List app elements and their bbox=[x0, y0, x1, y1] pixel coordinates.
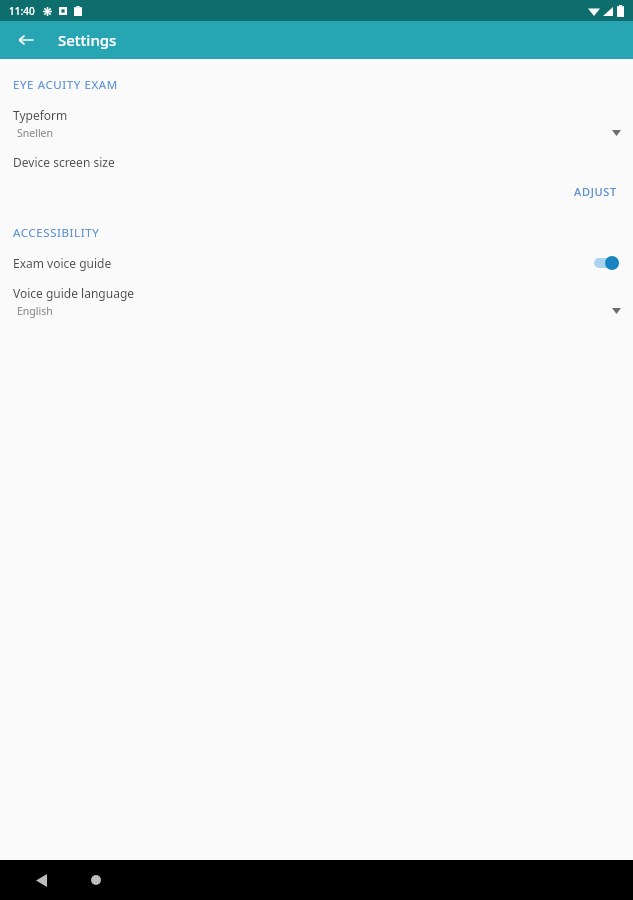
staticText: Snellen bbox=[17, 126, 54, 140]
staticText: Device screen size bbox=[13, 154, 115, 170]
staticText: EYE ACUITY EXAM bbox=[13, 77, 118, 93]
button[interactable]: Home bbox=[81, 865, 111, 895]
staticText: ACCESSIBILITY bbox=[13, 225, 100, 241]
staticText: English bbox=[17, 304, 53, 318]
staticText: Settings bbox=[58, 30, 117, 50]
staticText: 11:40 bbox=[9, 4, 35, 18]
button[interactable]: Device screen size bbox=[0, 154, 633, 170]
staticText: ADJUST bbox=[574, 184, 617, 199]
button[interactable]: Typeform bbox=[0, 107, 633, 140]
button[interactable]: Voice guide language bbox=[0, 285, 633, 318]
button[interactable]: Back bbox=[26, 865, 56, 895]
button[interactable]: Back bbox=[10, 24, 42, 56]
staticText: Typeform bbox=[13, 107, 68, 123]
button[interactable]: Exam voice guide bbox=[0, 255, 633, 271]
staticText: Exam voice guide bbox=[13, 255, 594, 271]
button[interactable]: ADJUST bbox=[566, 180, 625, 203]
staticText: Voice guide language bbox=[13, 285, 135, 301]
